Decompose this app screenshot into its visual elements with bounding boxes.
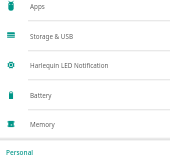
button[interactable]: Storage & USB (0, 21, 170, 50)
staticText: Harlequin LED Notification (30, 61, 109, 70)
staticText: Battery (30, 91, 52, 100)
staticText: Personal (6, 148, 34, 157)
button[interactable]: Battery (0, 80, 170, 109)
button[interactable]: Harlequin LED Notification (0, 50, 170, 79)
staticText: Apps (30, 2, 45, 11)
button[interactable]: Memory (0, 109, 170, 138)
staticText: Memory (30, 120, 55, 129)
staticText: Storage & USB (30, 32, 74, 41)
button[interactable]: Apps (0, 0, 170, 20)
